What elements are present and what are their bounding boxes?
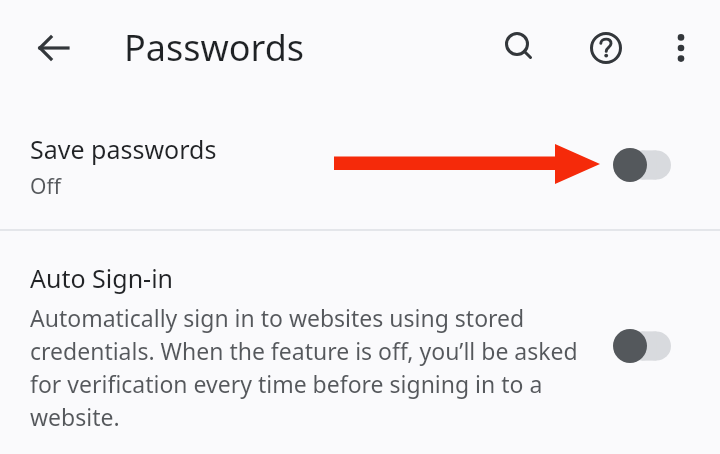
- staticText: Save passwords: [30, 132, 217, 166]
- button[interactable]: Search: [491, 19, 547, 75]
- staticText: Automatically sign in to websites using …: [30, 302, 590, 433]
- button[interactable]: Help: [578, 20, 634, 76]
- button[interactable]: Back: [26, 20, 82, 76]
- staticText: Auto Sign-in: [30, 261, 174, 295]
- button[interactable]: More options: [653, 20, 709, 76]
- button[interactable]: Toggle, off: [605, 148, 683, 182]
- staticText: Passwords: [124, 23, 305, 72]
- button[interactable]: Save passwords: [0, 110, 720, 230]
- button[interactable]: Toggle, off: [605, 329, 683, 363]
- staticText: Off: [30, 172, 61, 201]
- button[interactable]: Auto Sign-in: [0, 231, 720, 454]
